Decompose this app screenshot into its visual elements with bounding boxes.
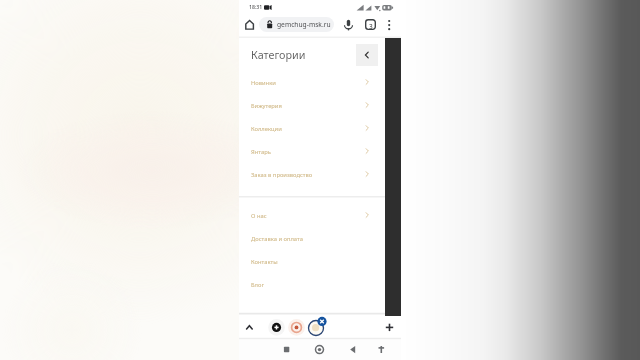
staticText: Коллекции xyxy=(251,125,282,133)
staticText: Контакты xyxy=(251,258,278,266)
staticText: 3 xyxy=(369,22,373,31)
button[interactable]: О нас xyxy=(239,204,401,227)
button[interactable]: Address bar, gemchug-msk.ru xyxy=(259,17,334,32)
button[interactable]: Бижутерия xyxy=(239,94,401,117)
button[interactable]: Back xyxy=(356,44,378,66)
button[interactable]: Доставка и оплата xyxy=(239,227,401,250)
staticText: gemchug-msk.ru xyxy=(277,20,331,29)
button[interactable]: Новинки xyxy=(239,71,401,94)
staticText: Категории xyxy=(251,47,306,62)
button[interactable]: Блог xyxy=(239,273,401,296)
button[interactable]: Янтарь xyxy=(239,140,401,163)
staticText: Блог xyxy=(251,281,264,289)
staticText: 18:31 xyxy=(249,3,263,10)
staticText: Новинки xyxy=(251,79,276,87)
button[interactable]: Заказ в производство xyxy=(239,163,401,186)
staticText: О нас xyxy=(251,212,267,220)
button[interactable]: Коллекции xyxy=(239,117,401,140)
staticText: Бижутерия xyxy=(251,102,282,110)
staticText: Доставка и оплата xyxy=(251,235,303,243)
staticText: Янтарь xyxy=(251,148,271,156)
staticText: Заказ в производство xyxy=(251,171,313,179)
button[interactable]: Контакты xyxy=(239,250,401,273)
